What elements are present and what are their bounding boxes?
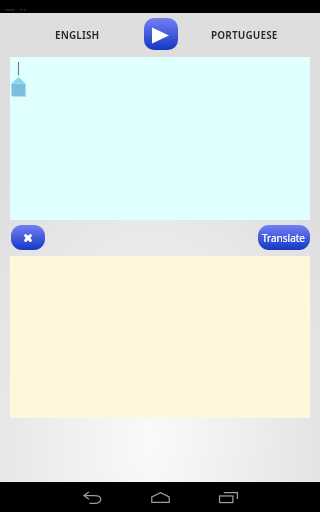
button[interactable]: Translate xyxy=(258,225,310,250)
staticText: PORTUGUESE xyxy=(211,28,278,42)
staticText: ENGLISH xyxy=(55,28,100,42)
button[interactable]: Home xyxy=(138,482,182,512)
button[interactable]: Clear xyxy=(11,225,45,250)
button[interactable] xyxy=(10,57,310,220)
staticText: Translate xyxy=(262,231,306,245)
button[interactable]: Recent apps xyxy=(206,482,250,512)
button[interactable]: Back xyxy=(70,482,114,512)
button[interactable]: Speak xyxy=(144,18,178,50)
button[interactable]: PORTUGUESE xyxy=(196,13,292,57)
button[interactable]: ENGLISH xyxy=(30,13,124,57)
